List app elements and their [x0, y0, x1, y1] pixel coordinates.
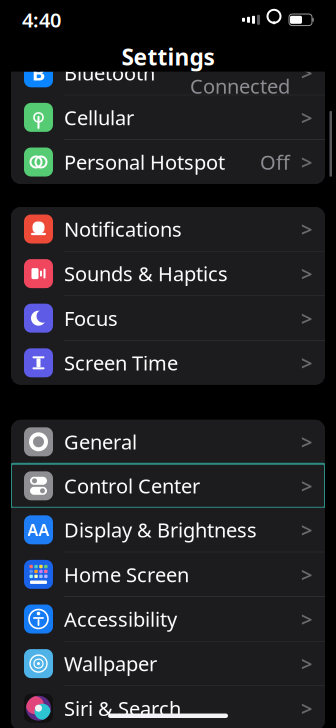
button[interactable]: Accessibility — [11, 597, 325, 641]
staticText: > — [301, 472, 312, 499]
staticText: Display & Brightness — [64, 516, 257, 543]
button[interactable]: Wallpaper — [11, 642, 325, 686]
staticText: > — [301, 428, 312, 455]
staticText: > — [301, 516, 312, 543]
staticText: Accessibility — [64, 606, 177, 632]
staticText: Screen Time — [64, 349, 178, 376]
staticText: > — [301, 59, 312, 86]
staticText: Home Screen — [64, 561, 189, 588]
button[interactable]: Sounds & Haptics — [11, 252, 325, 296]
staticText: > — [301, 104, 312, 131]
staticText: 4:40 — [22, 6, 61, 33]
button[interactable]: Home Screen — [11, 552, 325, 596]
staticText: > — [301, 216, 312, 242]
staticText: General — [64, 428, 137, 455]
staticText: Personal Hotspot — [64, 149, 225, 175]
staticText: > — [301, 650, 312, 677]
staticText: Off — [260, 149, 290, 175]
button[interactable]: B — [11, 51, 325, 95]
staticText: > — [301, 260, 312, 287]
staticText: Bluetooth — [64, 59, 155, 86]
button[interactable]: AA — [11, 508, 325, 552]
button[interactable]: Siri & Search — [11, 686, 325, 728]
staticText: Sounds & Haptics — [64, 260, 228, 287]
button[interactable]: Notifications — [11, 207, 325, 251]
staticText: > — [301, 561, 312, 588]
staticText: > — [301, 695, 312, 721]
button[interactable]: Personal Hotspot — [11, 140, 325, 184]
staticText: Focus — [64, 305, 118, 331]
staticText: Wallpaper — [64, 650, 157, 677]
staticText: > — [301, 149, 312, 175]
staticText: Cellular — [64, 104, 134, 131]
staticText: > — [301, 305, 312, 331]
button[interactable]: General — [11, 420, 325, 464]
staticText: > — [301, 349, 312, 376]
button[interactable]: Screen Time — [11, 341, 325, 385]
staticText: B — [32, 59, 45, 86]
staticText: AA — [27, 519, 49, 540]
staticText: Siri & Search — [64, 695, 181, 721]
button[interactable]: Focus — [11, 296, 325, 340]
staticText: Settings — [121, 42, 214, 72]
button[interactable]: Control Center — [11, 464, 325, 508]
button[interactable]: Cellular — [11, 95, 325, 139]
staticText: Notifications — [64, 216, 182, 242]
staticText: Not Connected — [190, 46, 290, 99]
staticText: > — [301, 606, 312, 632]
staticText: Control Center — [64, 472, 200, 499]
